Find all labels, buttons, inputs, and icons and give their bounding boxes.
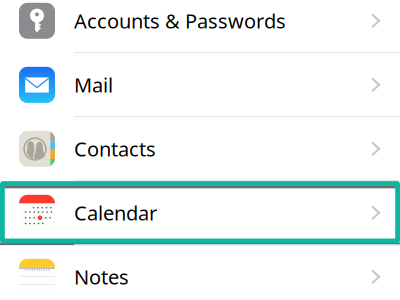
staticText: Mail: [74, 71, 113, 98]
staticText: Contacts: [74, 135, 156, 162]
button[interactable]: Mail: [0, 53, 400, 116]
button[interactable]: Notes: [0, 245, 400, 300]
staticText: Calendar: [74, 199, 157, 226]
button[interactable]: Calendar: [0, 181, 400, 244]
staticText: Accounts & Passwords: [74, 7, 286, 34]
staticText: Notes: [74, 263, 129, 290]
button[interactable]: Contacts: [0, 117, 400, 180]
button[interactable]: Accounts & Passwords: [0, 0, 400, 52]
